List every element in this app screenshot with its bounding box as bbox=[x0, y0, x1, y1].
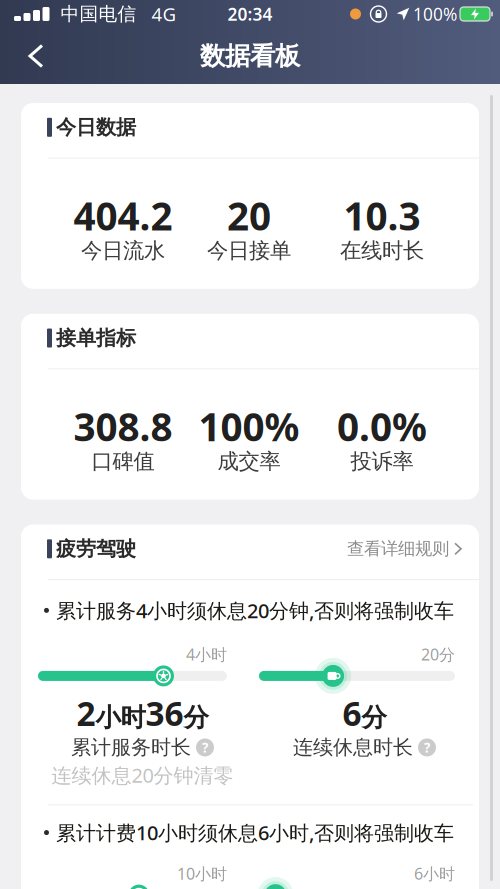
staticText: 36 bbox=[145, 691, 183, 735]
staticText: ? bbox=[424, 739, 430, 756]
button[interactable]: Help bbox=[196, 738, 214, 756]
staticText: 小时 bbox=[95, 702, 145, 733]
staticText: 查看详细规则 bbox=[347, 538, 449, 559]
staticText: 连续休息20分钟清零 bbox=[51, 762, 233, 788]
staticText: 2 bbox=[76, 691, 95, 735]
staticText: 10.3 bbox=[343, 190, 420, 241]
staticText: 100% bbox=[198, 401, 299, 452]
staticText: 20分 bbox=[421, 644, 455, 665]
staticText: 20 bbox=[227, 190, 271, 241]
staticText: 4小时 bbox=[186, 644, 227, 665]
staticText: ? bbox=[202, 739, 208, 756]
staticText: 404.2 bbox=[73, 190, 172, 241]
staticText: 0.0% bbox=[337, 401, 427, 452]
button[interactable]: Back bbox=[0, 37, 42, 74]
staticText: 数据看板 bbox=[200, 40, 300, 71]
staticText: 分 bbox=[183, 702, 208, 733]
staticText: 成交率 bbox=[217, 448, 280, 474]
staticText: 疲劳驾驶 bbox=[56, 536, 136, 561]
staticText: 6 bbox=[342, 691, 361, 735]
staticText: 4G bbox=[151, 2, 176, 26]
staticText: 累计服务4小时须休息20分钟,否则将强制收车 bbox=[56, 597, 454, 624]
button[interactable]: 查看详细规则 bbox=[347, 538, 461, 559]
staticText: 6小时 bbox=[414, 863, 455, 884]
staticText: 分 bbox=[361, 702, 386, 733]
staticText: 100% bbox=[413, 2, 457, 25]
staticText: 累计计费10小时须休息6小时,否则将强制收车 bbox=[56, 819, 454, 846]
staticText: 接单指标 bbox=[56, 326, 136, 350]
staticText: 今日接单 bbox=[207, 238, 291, 264]
staticText: 今日流水 bbox=[81, 238, 165, 264]
button[interactable]: Help bbox=[418, 738, 436, 756]
staticText: 连续休息时长 bbox=[293, 735, 413, 760]
staticText: 308.8 bbox=[73, 401, 172, 452]
staticText: 口碑值 bbox=[91, 448, 154, 474]
staticText: 累计服务时长 bbox=[71, 735, 191, 760]
staticText: 10小时 bbox=[177, 863, 227, 884]
staticText: 今日数据 bbox=[56, 115, 136, 140]
staticText: 投诉率 bbox=[350, 448, 413, 474]
staticText: 在线时长 bbox=[340, 238, 424, 264]
staticText: 中国电信 bbox=[60, 2, 136, 25]
staticText: 20:34 bbox=[227, 2, 272, 25]
